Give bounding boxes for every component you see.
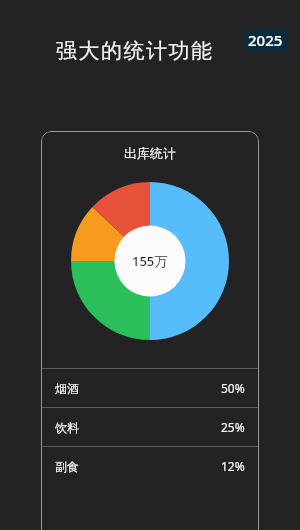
staticText: 25% — [221, 419, 245, 435]
staticText: 强大的统计功能 — [56, 38, 214, 64]
staticText: 50% — [221, 380, 245, 396]
other: 出库统计饼图 — [71, 182, 229, 340]
staticText: 2025 — [248, 30, 283, 50]
staticText: 副食 — [55, 459, 79, 474]
staticText: 12% — [221, 458, 245, 474]
staticText: 155万 — [132, 252, 168, 270]
button[interactable]: 出库统计 — [41, 131, 259, 530]
button[interactable]: 副食 — [41, 447, 259, 485]
button[interactable]: 烟酒 — [41, 369, 259, 407]
staticText: 出库统计 — [124, 145, 176, 161]
staticText: 饮料 — [55, 420, 79, 435]
button[interactable]: 2025 — [248, 30, 283, 50]
button[interactable]: 饮料 — [41, 408, 259, 446]
staticText: 烟酒 — [55, 381, 79, 396]
